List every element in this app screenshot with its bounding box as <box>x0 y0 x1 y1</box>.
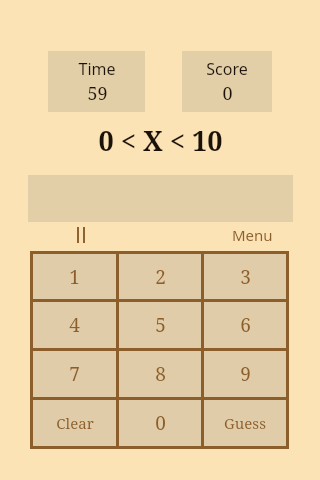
button[interactable]: 5 <box>119 302 201 348</box>
button[interactable]: Guess <box>204 400 286 446</box>
staticText: 9 <box>240 361 251 387</box>
button[interactable]: Score <box>182 51 272 112</box>
staticText: 7 <box>69 361 80 387</box>
staticText: 5 <box>155 312 166 338</box>
staticText: 0 < X < 10 <box>98 122 223 156</box>
staticText: 1 <box>69 264 80 290</box>
staticText: 0 <box>222 81 233 106</box>
staticText: Score <box>206 58 248 80</box>
staticText: 2 <box>155 264 166 290</box>
staticText: Guess <box>224 413 266 433</box>
button[interactable]: Pause <box>68 224 94 246</box>
button[interactable]: 3 <box>204 254 286 299</box>
button[interactable]: Time <box>48 51 145 112</box>
button[interactable]: 9 <box>204 351 286 397</box>
staticText: 0 <box>155 410 166 436</box>
staticText: Menu <box>232 225 273 245</box>
button[interactable]: 0 <box>119 400 201 446</box>
button[interactable]: 6 <box>204 302 286 348</box>
staticText: 8 <box>155 361 166 387</box>
staticText: 3 <box>240 264 251 290</box>
button[interactable]: 4 <box>33 302 116 348</box>
button[interactable]: 1 <box>33 254 116 299</box>
button[interactable]: Clear <box>33 400 116 446</box>
button[interactable]: 7 <box>33 351 116 397</box>
staticText: 4 <box>69 312 80 338</box>
button[interactable]: 8 <box>119 351 201 397</box>
button[interactable]: 2 <box>119 254 201 299</box>
staticText: 59 <box>87 81 108 106</box>
staticText: Time <box>78 58 116 80</box>
button[interactable]: Menu <box>232 225 273 245</box>
staticText: Clear <box>56 413 94 433</box>
staticText: 6 <box>240 312 251 338</box>
